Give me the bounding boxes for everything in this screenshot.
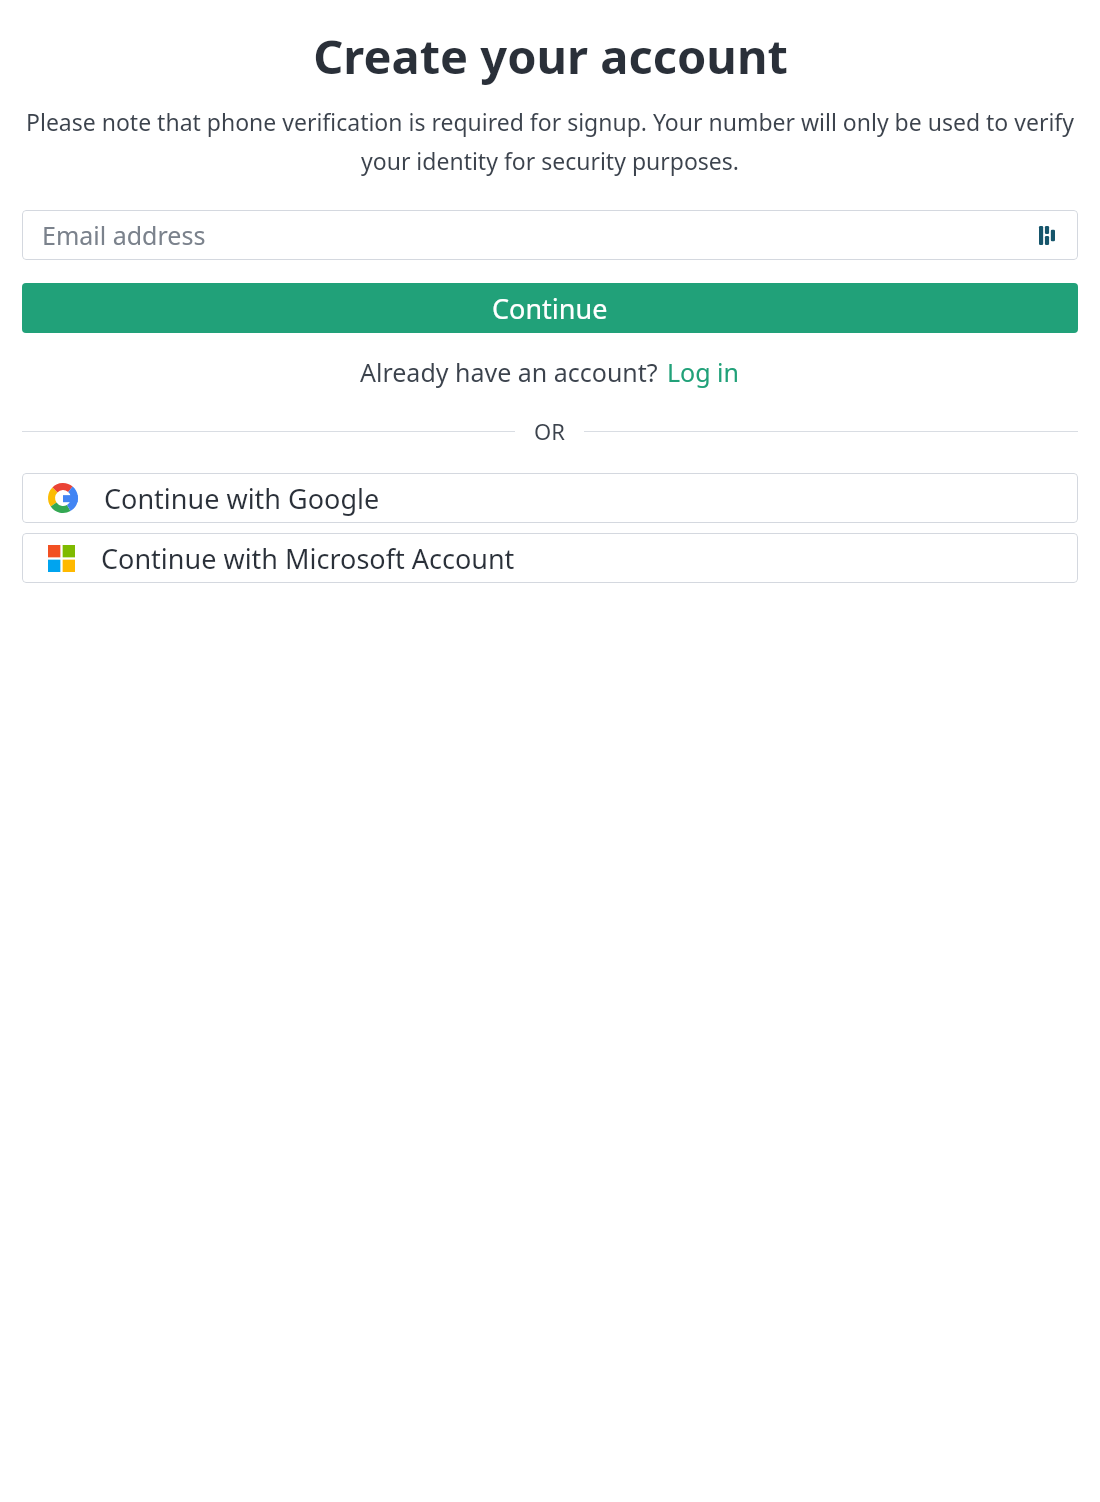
button[interactable]: Continue with Google bbox=[22, 473, 1078, 523]
staticText: Continue bbox=[492, 290, 608, 327]
button[interactable]: Autofill password manager bbox=[1036, 224, 1058, 246]
staticText: Please note that phone verification is r… bbox=[22, 106, 1078, 177]
button[interactable]: Continue bbox=[22, 283, 1078, 333]
staticText: Continue with Google bbox=[104, 480, 380, 517]
staticText: Continue with Microsoft Account bbox=[101, 540, 515, 577]
button[interactable]: Email address bbox=[22, 210, 1078, 260]
button[interactable]: Log in bbox=[667, 355, 740, 389]
staticText: Email address bbox=[42, 218, 206, 252]
button[interactable]: Continue with Microsoft Account bbox=[22, 533, 1078, 583]
staticText: Log in bbox=[667, 355, 740, 389]
staticText: Already have an account? bbox=[360, 355, 658, 389]
staticText: OR bbox=[534, 416, 565, 446]
staticText: Create your account bbox=[313, 24, 788, 88]
